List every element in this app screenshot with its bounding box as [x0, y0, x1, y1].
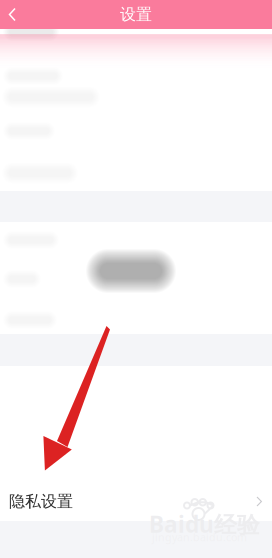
staticText: Baidu经验 [149, 509, 260, 539]
staticText: 隐私设置 [9, 492, 73, 511]
button[interactable]: 隐私设置 [0, 482, 272, 521]
button[interactable]: Back [0, 0, 32, 29]
staticText: 设置 [120, 5, 152, 24]
